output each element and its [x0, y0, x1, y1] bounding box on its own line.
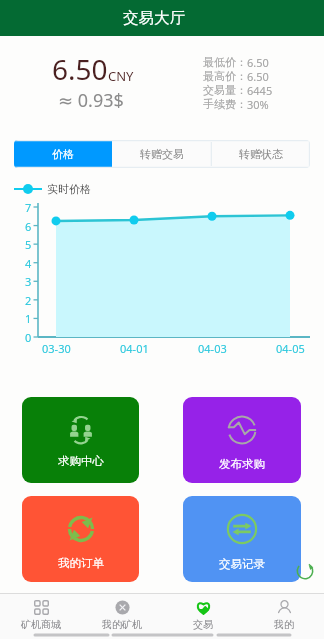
button[interactable]: 我的 [243, 594, 324, 632]
staticText: 03-30 [42, 341, 71, 356]
other: Refresh [294, 560, 316, 582]
staticText: 我的 [274, 618, 294, 631]
staticText: 交易 [193, 618, 213, 631]
button[interactable]: 我的矿机 [81, 594, 162, 632]
button[interactable]: 求购中心 [22, 397, 139, 483]
button[interactable]: 价格 [14, 140, 112, 168]
staticText: 交易记录 [219, 557, 265, 571]
staticText: 0 [25, 330, 32, 345]
staticText: 求购中心 [58, 454, 104, 468]
button[interactable]: 转赠交易 [112, 140, 211, 168]
staticText: 价格 [52, 147, 74, 161]
staticText: 04-05 [276, 341, 305, 356]
staticText: ≈ 0.93$ [58, 88, 124, 113]
button[interactable]: 我的订单 [22, 496, 139, 582]
staticText: 5 [25, 237, 32, 252]
button[interactable]: 交易记录 [183, 496, 301, 582]
staticText: 6445 [247, 83, 273, 97]
staticText: 6.50 [247, 69, 269, 83]
staticText: 矿机商城 [21, 618, 61, 631]
staticText: 我的订单 [58, 556, 104, 570]
staticText: 实时价格 [47, 182, 91, 196]
staticText: 30% [247, 97, 269, 111]
staticText: 交易大厅 [123, 8, 185, 28]
button[interactable]: 矿机商城 [0, 594, 81, 632]
staticText: 04-01 [120, 341, 149, 356]
staticText: 6 [25, 219, 32, 234]
staticText: 手续费： [203, 97, 247, 111]
staticText: 发布求购 [219, 457, 265, 471]
staticText: 最低价： [203, 55, 247, 69]
staticText: 最高价： [203, 69, 247, 83]
button[interactable]: 转赠状态 [211, 140, 310, 168]
staticText: 我的矿机 [102, 618, 142, 631]
staticText: 6.50 [247, 55, 269, 69]
staticText: 交易量： [203, 83, 247, 97]
staticText: 3 [25, 274, 32, 289]
staticText: 4 [25, 256, 32, 271]
staticText: 7 [25, 200, 32, 215]
staticText: 6.50 [52, 50, 108, 88]
button[interactable]: 发布求购 [183, 397, 301, 483]
staticText: CNY [108, 67, 134, 85]
button[interactable]: 交易 [162, 594, 243, 632]
staticText: 04-03 [198, 341, 227, 356]
staticText: 转赠交易 [140, 147, 184, 161]
staticText: 2 [25, 293, 32, 308]
staticText: 1 [25, 311, 32, 326]
staticText: 转赠状态 [239, 147, 283, 161]
